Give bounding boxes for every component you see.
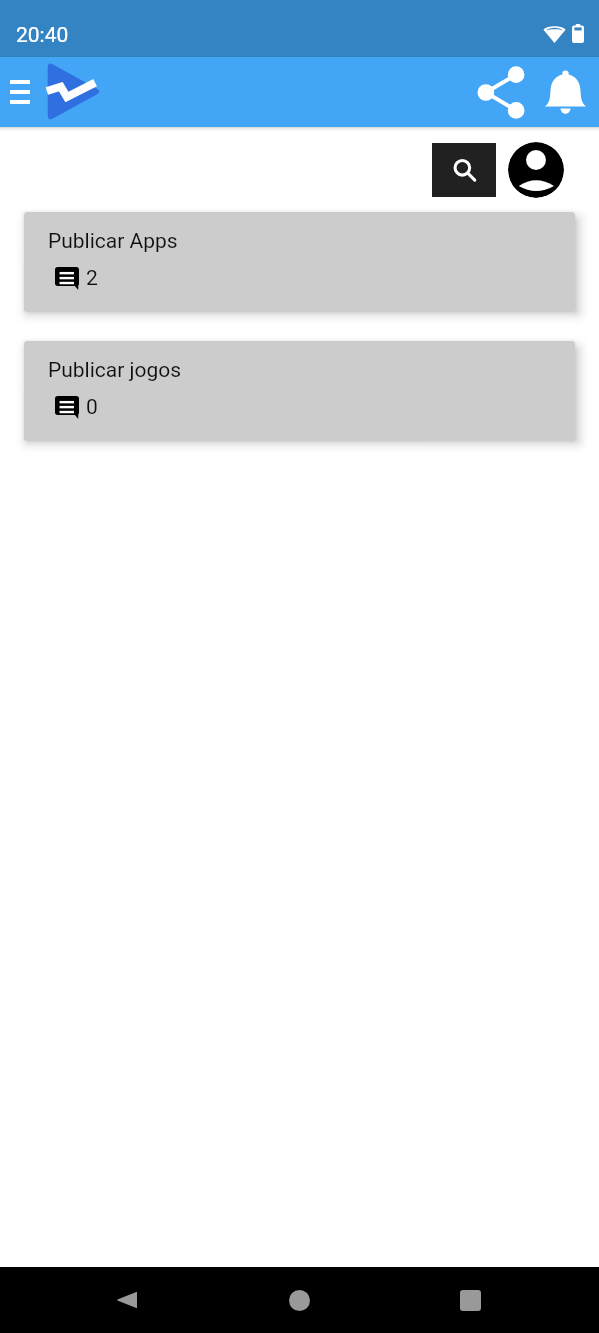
button[interactable]: Share bbox=[473, 64, 529, 120]
button[interactable]: Recent apps bbox=[442, 1272, 498, 1328]
staticText: 2 bbox=[86, 266, 98, 291]
button[interactable]: Home bbox=[271, 1272, 327, 1328]
staticText: Publicar Apps bbox=[48, 229, 178, 254]
button[interactable]: Publicar jogos bbox=[24, 341, 575, 441]
staticText: 0 bbox=[86, 395, 98, 420]
button[interactable]: Search bbox=[432, 143, 496, 197]
button[interactable]: Back bbox=[98, 1272, 154, 1328]
button[interactable]: Notifications bbox=[537, 64, 593, 120]
button[interactable]: Open navigation menu bbox=[0, 70, 40, 114]
button[interactable]: Publicar Apps bbox=[24, 212, 575, 312]
button[interactable]: Account bbox=[508, 142, 564, 198]
staticText: Publicar jogos bbox=[48, 358, 182, 383]
staticText: 20:40 bbox=[16, 23, 69, 48]
